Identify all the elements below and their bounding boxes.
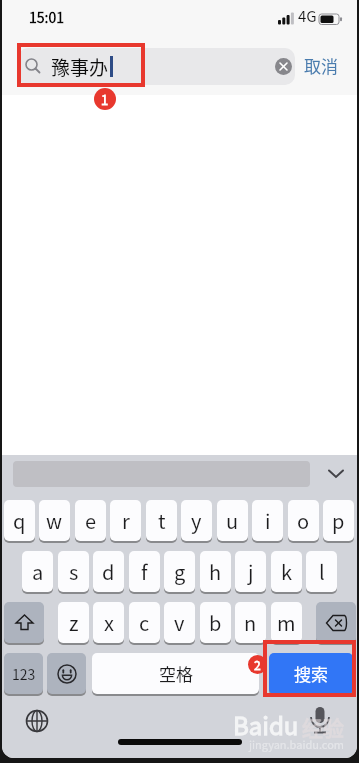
- staticText: r: [122, 506, 130, 535]
- staticText: q: [13, 506, 26, 535]
- staticText: a: [32, 557, 44, 586]
- staticText: 1: [101, 90, 109, 109]
- staticText: z: [69, 608, 79, 637]
- button[interactable]: p: [323, 500, 354, 541]
- button[interactable]: 取消: [304, 53, 338, 78]
- staticText: j: [248, 557, 254, 586]
- staticText: 搜索: [294, 661, 328, 686]
- button[interactable]: x: [93, 602, 124, 643]
- staticText: u: [226, 506, 239, 535]
- button[interactable]: b: [200, 602, 231, 643]
- button[interactable]: [316, 602, 356, 643]
- button[interactable]: o: [288, 500, 319, 541]
- button[interactable]: l: [306, 551, 337, 592]
- button[interactable]: 豫事办: [18, 48, 295, 85]
- button[interactable]: z: [58, 602, 89, 643]
- button[interactable]: n: [235, 602, 266, 643]
- button[interactable]: g: [164, 551, 195, 592]
- button[interactable]: h: [200, 551, 231, 592]
- button[interactable]: c: [129, 602, 160, 643]
- button[interactable]: f: [129, 551, 160, 592]
- button[interactable]: 123: [4, 653, 43, 694]
- staticText: s: [69, 557, 79, 586]
- staticText: e: [85, 506, 97, 535]
- staticText: t: [158, 506, 166, 535]
- button[interactable]: e: [75, 500, 106, 541]
- button[interactable]: r: [110, 500, 141, 541]
- staticText: 豫事办: [51, 53, 109, 81]
- staticText: 123: [12, 664, 36, 684]
- button[interactable]: t: [146, 500, 177, 541]
- staticText: x: [104, 608, 114, 637]
- button[interactable]: i: [252, 500, 283, 541]
- button[interactable]: [308, 707, 332, 741]
- staticText: o: [297, 506, 310, 535]
- staticText: n: [244, 608, 257, 637]
- staticText: d: [102, 557, 115, 586]
- staticText: c: [139, 608, 150, 637]
- staticText: g: [174, 557, 186, 586]
- button[interactable]: [275, 58, 292, 75]
- button[interactable]: y: [181, 500, 212, 541]
- button[interactable]: 搜索: [269, 653, 353, 694]
- staticText: 取消: [304, 53, 338, 78]
- button[interactable]: j: [235, 551, 266, 592]
- button[interactable]: d: [93, 551, 124, 592]
- button[interactable]: [24, 710, 50, 736]
- button[interactable]: k: [271, 551, 302, 592]
- staticText: p: [332, 506, 345, 535]
- staticText: h: [209, 557, 222, 586]
- button[interactable]: m: [271, 602, 302, 643]
- staticText: y: [191, 506, 202, 535]
- button[interactable]: u: [217, 500, 248, 541]
- staticText: f: [141, 557, 148, 586]
- staticText: i: [265, 506, 271, 535]
- staticText: 15:01: [29, 7, 64, 27]
- button[interactable]: 空格: [92, 653, 259, 694]
- button[interactable]: s: [58, 551, 89, 592]
- staticText: 2: [254, 656, 261, 673]
- button[interactable]: w: [39, 500, 70, 541]
- button[interactable]: [4, 602, 44, 643]
- staticText: 空格: [159, 661, 193, 686]
- staticText: b: [209, 608, 222, 637]
- button[interactable]: [47, 653, 86, 694]
- staticText: w: [46, 506, 63, 535]
- staticText: Baidu: [233, 707, 299, 742]
- staticText: l: [319, 557, 325, 586]
- staticText: jingyan.baidu.com: [249, 736, 345, 752]
- staticText: m: [277, 608, 296, 637]
- staticText: k: [281, 557, 293, 586]
- button[interactable]: v: [164, 602, 195, 643]
- staticText: 4G: [298, 5, 317, 27]
- staticText: v: [174, 608, 185, 637]
- button[interactable]: q: [4, 500, 35, 541]
- button[interactable]: a: [22, 551, 53, 592]
- staticText: 经验: [302, 712, 344, 742]
